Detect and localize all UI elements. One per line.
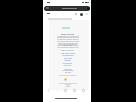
button[interactable]: Use key [63,59,72,61]
button[interactable]: Address bar [44,6,90,11]
staticText: Looking for something else? Visit help [61,68,75,74]
button[interactable]: Account [87,7,90,10]
button[interactable]: Check your phone [61,49,74,51]
button[interactable]: Apps [80,13,83,16]
staticText: Google sent a notification to your phone… [57,43,79,49]
staticText: You received this message because [58,82,78,86]
button[interactable]: Get a code [62,57,74,59]
button[interactable]: Home [62,87,68,93]
button[interactable]: More options [62,62,73,64]
staticText: Share or report feedback [59,74,77,76]
button[interactable]: Try another way [61,54,75,56]
button[interactable]: Tabs [71,87,77,93]
button[interactable]: Forward [54,87,60,93]
staticText: Verify it's you [58,33,77,36]
staticText: To help keep your account safe Google wa… [57,35,79,47]
button[interactable]: Back [45,87,51,93]
button[interactable]: Menu [80,87,86,93]
button[interactable]: I didn't get a prompt [60,52,76,54]
staticText: Learn more [63,64,72,66]
staticText: of activity [65,84,71,88]
